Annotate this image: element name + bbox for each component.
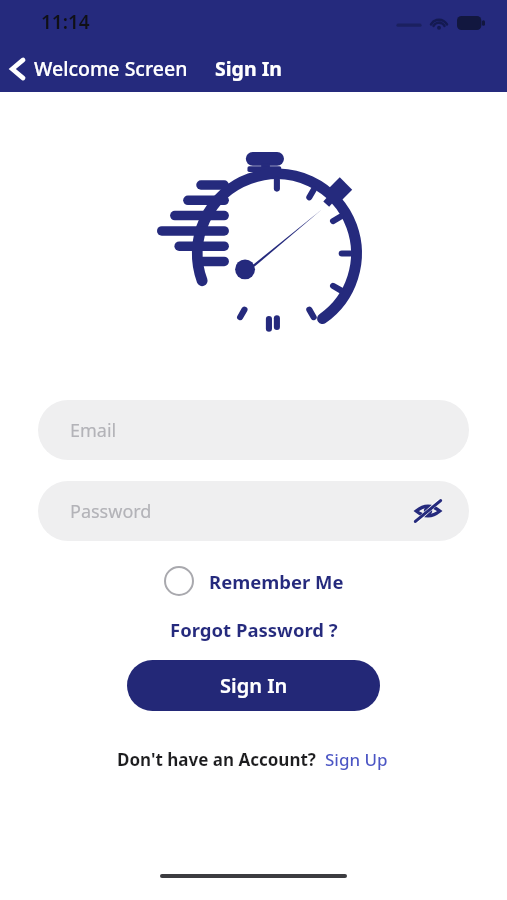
button[interactable]: Password bbox=[38, 481, 469, 541]
button[interactable]: Back bbox=[0, 49, 192, 88]
button[interactable]: Show password bbox=[409, 492, 447, 530]
other: Back bbox=[10, 57, 26, 81]
button[interactable]: Sign Up bbox=[323, 744, 390, 775]
button[interactable]: Sign In bbox=[213, 49, 284, 88]
staticText: Don't have an Account? bbox=[117, 748, 316, 771]
staticText: Welcome Screen bbox=[34, 55, 188, 82]
staticText: Email bbox=[70, 418, 117, 443]
staticText: 11:14 bbox=[41, 9, 90, 35]
staticText: Password bbox=[70, 499, 152, 524]
button[interactable]: Sign In bbox=[127, 660, 380, 711]
button[interactable]: Email bbox=[38, 400, 469, 460]
button[interactable]: Forgot Password ? bbox=[162, 612, 346, 647]
staticText: Remember Me bbox=[209, 569, 344, 594]
staticText: Sign In bbox=[220, 672, 288, 699]
button[interactable]: Remember Me bbox=[158, 562, 350, 600]
